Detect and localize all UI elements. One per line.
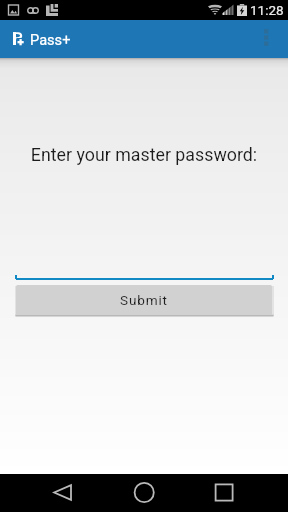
staticText: 11:28 [250, 2, 284, 18]
button[interactable]: More options [254, 20, 288, 58]
button[interactable]: Back [0, 474, 96, 512]
staticText: Submit [120, 292, 168, 308]
button[interactable]: Home [96, 474, 192, 512]
button[interactable]: Submit [16, 285, 272, 315]
staticText: Pass+ [30, 31, 71, 48]
button[interactable]: Recent apps [192, 474, 288, 512]
button[interactable]: Password field [0, 271, 288, 285]
staticText: Enter your master password: [0, 144, 288, 165]
